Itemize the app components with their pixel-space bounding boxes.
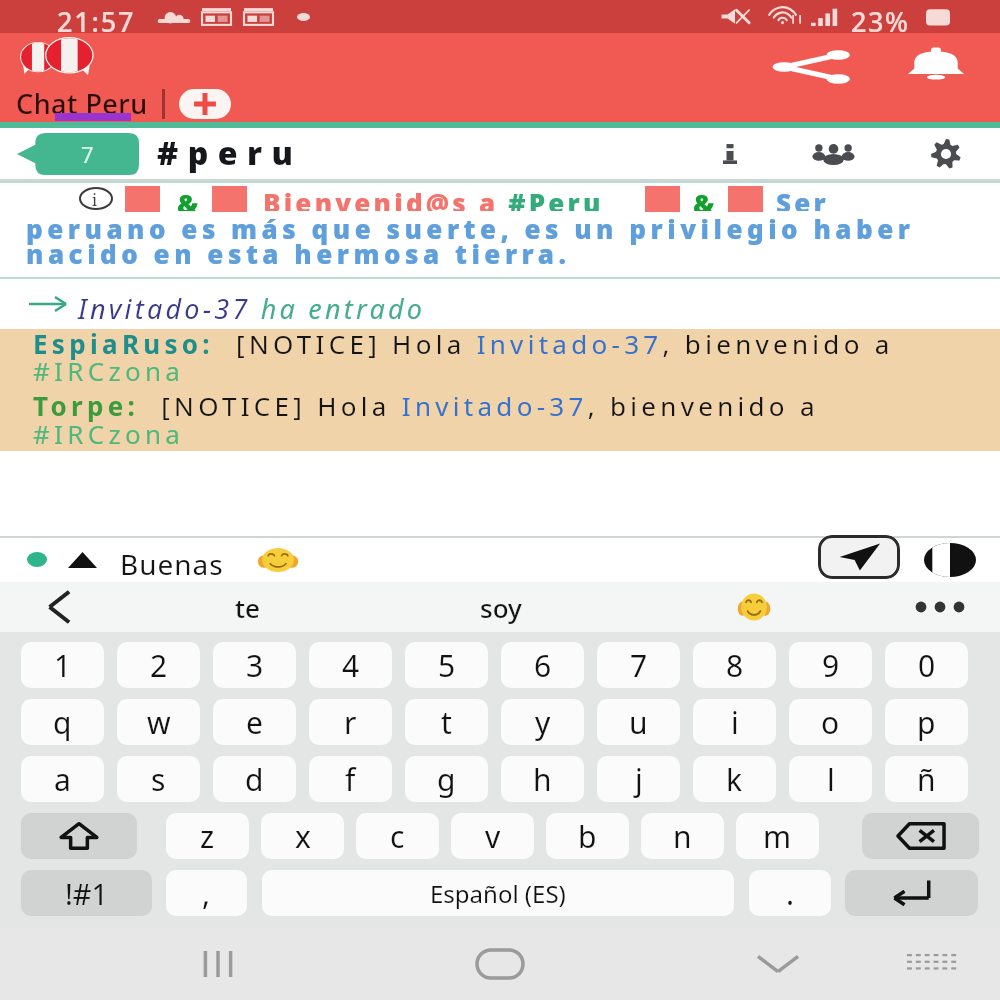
- staticText: #IRCzona: [33, 353, 185, 388]
- button[interactable]: p: [885, 699, 968, 745]
- button[interactable]: Keyboard switcher: [894, 928, 974, 1000]
- button[interactable]: s: [117, 756, 200, 802]
- button[interactable]: h: [501, 756, 584, 802]
- staticText: Invitado-37 ha entrado: [78, 290, 426, 327]
- button[interactable]: Hide keyboard: [728, 928, 828, 1000]
- button[interactable]: u: [597, 699, 680, 745]
- button[interactable]: .: [749, 870, 831, 916]
- button[interactable]: Delete: [862, 813, 979, 859]
- staticText: 3: [246, 645, 264, 686]
- button[interactable]: r: [309, 699, 392, 745]
- button[interactable]: Share: [758, 33, 868, 108]
- staticText: f: [345, 759, 356, 800]
- staticText: a: [54, 759, 71, 800]
- button[interactable]: y: [501, 699, 584, 745]
- button[interactable]: i: [693, 699, 776, 745]
- staticText: ñ: [917, 759, 936, 800]
- button[interactable]: z: [166, 813, 249, 859]
- button[interactable]: 2: [117, 642, 200, 688]
- button[interactable]: Members: [797, 128, 869, 179]
- button[interactable]: q: [21, 699, 104, 745]
- button[interactable]: v: [451, 813, 534, 859]
- other: Enter: [890, 879, 934, 907]
- button[interactable]: 3: [213, 642, 296, 688]
- button[interactable]: f: [309, 756, 392, 802]
- button[interactable]: m: [736, 813, 819, 859]
- button[interactable]: 8: [693, 642, 776, 688]
- button[interactable]: Previous: [0, 582, 120, 632]
- button[interactable]: Shift: [21, 813, 137, 859]
- staticText: c: [390, 816, 405, 857]
- staticText: Español (ES): [430, 877, 566, 910]
- staticText: u: [629, 702, 648, 743]
- button[interactable]: 0: [885, 642, 968, 688]
- button[interactable]: Settings: [910, 128, 982, 179]
- staticText: t: [441, 702, 452, 743]
- button[interactable]: 5: [405, 642, 488, 688]
- button[interactable]: 4: [309, 642, 392, 688]
- staticText: i: [731, 702, 739, 743]
- button[interactable]: d: [213, 756, 296, 802]
- button[interactable]: ñ: [885, 756, 968, 802]
- button[interactable]: soy: [374, 582, 627, 632]
- staticText: 0: [918, 645, 936, 686]
- other: Delete: [897, 822, 945, 850]
- button[interactable]: Home: [450, 928, 550, 1000]
- button[interactable]: More options: [880, 582, 1000, 632]
- button[interactable]: Back to channels: [17, 133, 139, 175]
- button[interactable]: e: [213, 699, 296, 745]
- button[interactable]: c: [356, 813, 439, 859]
- staticText: k: [726, 759, 743, 800]
- staticText: 2: [150, 645, 168, 686]
- staticText: ,: [202, 873, 211, 914]
- staticText: h: [533, 759, 552, 800]
- button[interactable]: Recents: [168, 928, 268, 1000]
- staticText: 7: [630, 645, 648, 686]
- button[interactable]: Enter: [845, 870, 978, 916]
- staticText: r: [344, 702, 357, 743]
- button[interactable]: j: [597, 756, 680, 802]
- staticText: m: [763, 816, 792, 857]
- button[interactable]: 6: [501, 642, 584, 688]
- staticText: Chat Peru: [16, 85, 148, 122]
- staticText: 1: [54, 645, 72, 686]
- button[interactable]: a: [21, 756, 104, 802]
- button[interactable]: n: [641, 813, 724, 859]
- button[interactable]: ,: [166, 870, 247, 916]
- button[interactable]: Add channel: [179, 89, 231, 119]
- button[interactable]: Send: [818, 535, 900, 579]
- button[interactable]: g: [405, 756, 488, 802]
- staticText: e: [246, 702, 263, 743]
- button[interactable]: b: [546, 813, 629, 859]
- staticText: Bienvenid@s a #Peru: [263, 185, 604, 211]
- button[interactable]: 7: [597, 642, 680, 688]
- staticText: v: [485, 816, 501, 857]
- button[interactable]: Info: [694, 128, 766, 179]
- button[interactable]: Notifications: [881, 33, 991, 108]
- staticText: o: [821, 702, 840, 743]
- button[interactable]: !#1: [21, 870, 152, 916]
- staticText: d: [245, 759, 264, 800]
- button[interactable]: [627, 582, 880, 632]
- staticText: y: [535, 702, 551, 743]
- staticText: Torpe: [NOTICE] Hola Invitado-37, bienve…: [33, 388, 819, 423]
- button[interactable]: Expand: [68, 552, 97, 568]
- button[interactable]: o: [789, 699, 872, 745]
- button[interactable]: 9: [789, 642, 872, 688]
- staticText: EspiaRuso: [NOTICE] Hola Invitado-37, bi…: [33, 326, 894, 361]
- staticText: &: [177, 185, 199, 211]
- button[interactable]: Español (ES): [262, 870, 734, 916]
- staticText: n: [673, 816, 692, 857]
- button[interactable]: k: [693, 756, 776, 802]
- staticText: !#1: [65, 874, 109, 913]
- button[interactable]: te: [120, 582, 374, 632]
- button[interactable]: Theme: [922, 541, 978, 579]
- staticText: s: [151, 759, 166, 800]
- staticText: p: [917, 702, 936, 743]
- button[interactable]: w: [117, 699, 200, 745]
- button[interactable]: l: [789, 756, 872, 802]
- button[interactable]: t: [405, 699, 488, 745]
- button[interactable]: x: [261, 813, 344, 859]
- staticText: .: [786, 873, 795, 914]
- button[interactable]: 1: [21, 642, 104, 688]
